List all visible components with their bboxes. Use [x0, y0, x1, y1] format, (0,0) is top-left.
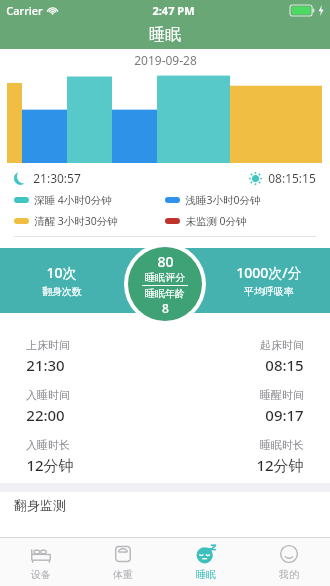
staticText: 8	[162, 300, 169, 316]
staticText: 08:15:15	[268, 170, 316, 186]
staticText: 1000次/分	[236, 263, 302, 282]
staticText: 08:15	[265, 355, 304, 375]
staticText: 12分钟	[256, 455, 304, 475]
other: 体重	[112, 543, 134, 565]
staticText: 10次	[46, 263, 77, 282]
staticText: 2019-09-28	[134, 52, 197, 68]
staticText: 21:30:57	[33, 170, 81, 186]
staticText: 睡眠	[149, 25, 181, 45]
staticText: 睡眠评分	[145, 271, 185, 284]
staticText: 睡眠年龄	[145, 287, 185, 300]
button[interactable]: 体重	[82, 538, 164, 586]
staticText: 睡眠	[196, 568, 216, 581]
staticText: 09:17	[265, 405, 304, 425]
staticText: Carrier	[6, 3, 43, 18]
staticText: 翻身监测	[14, 497, 66, 513]
other: 睡眠	[195, 543, 217, 565]
staticText: 体重	[113, 568, 133, 581]
staticText: 清醒 3小时30分钟	[34, 214, 118, 228]
button[interactable]: 睡眠	[164, 538, 247, 586]
button[interactable]: 我的	[247, 538, 330, 586]
staticText: 平均呼吸率	[244, 285, 294, 298]
staticText: 睡眠时长	[260, 438, 304, 452]
staticText: 未监测 0分钟	[185, 214, 247, 228]
staticText: 上床时间	[26, 338, 70, 352]
button[interactable]: 80	[128, 247, 202, 321]
staticText: 睡醒时间	[260, 388, 304, 402]
staticText: 起床时间	[260, 338, 304, 352]
button[interactable]: 翻身监测	[0, 492, 330, 518]
staticText: 浅睡3小时0分钟	[185, 193, 261, 207]
other: 我的	[278, 543, 300, 565]
staticText: 22:00	[26, 405, 65, 425]
staticText: 入睡时间	[26, 388, 70, 402]
staticText: 深睡 4小时0分钟	[34, 193, 112, 207]
staticText: 我的	[279, 568, 299, 581]
staticText: 12分钟	[26, 455, 74, 475]
other: 设备	[30, 543, 52, 565]
staticText: 2:47 PM	[152, 3, 195, 18]
staticText: 翻身次数	[42, 285, 82, 298]
staticText: 21:30	[26, 355, 65, 375]
button[interactable]: 设备	[0, 538, 82, 586]
staticText: 设备	[31, 568, 51, 581]
staticText: 80	[157, 252, 174, 271]
staticText: 入睡时长	[26, 438, 70, 452]
